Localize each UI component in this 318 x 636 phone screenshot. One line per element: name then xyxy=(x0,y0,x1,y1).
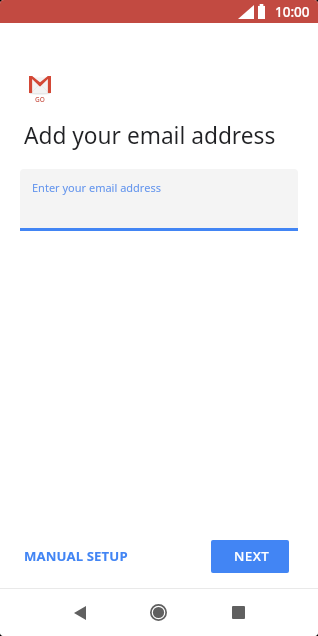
button[interactable]: Recent apps xyxy=(216,589,260,636)
button[interactable]: Back xyxy=(58,589,102,636)
staticText: Add your email address xyxy=(24,120,276,151)
button[interactable]: Home xyxy=(136,589,180,636)
staticText: NEXT xyxy=(234,547,270,565)
staticText: GO xyxy=(35,95,45,104)
staticText: MANUAL SETUP xyxy=(24,547,128,565)
button[interactable]: MANUAL SETUP xyxy=(14,538,138,574)
button[interactable]: Enter your email address xyxy=(20,169,298,228)
button[interactable]: NEXT xyxy=(211,540,289,573)
staticText: Enter your email address xyxy=(32,180,161,195)
staticText: 10:00 xyxy=(275,3,310,21)
